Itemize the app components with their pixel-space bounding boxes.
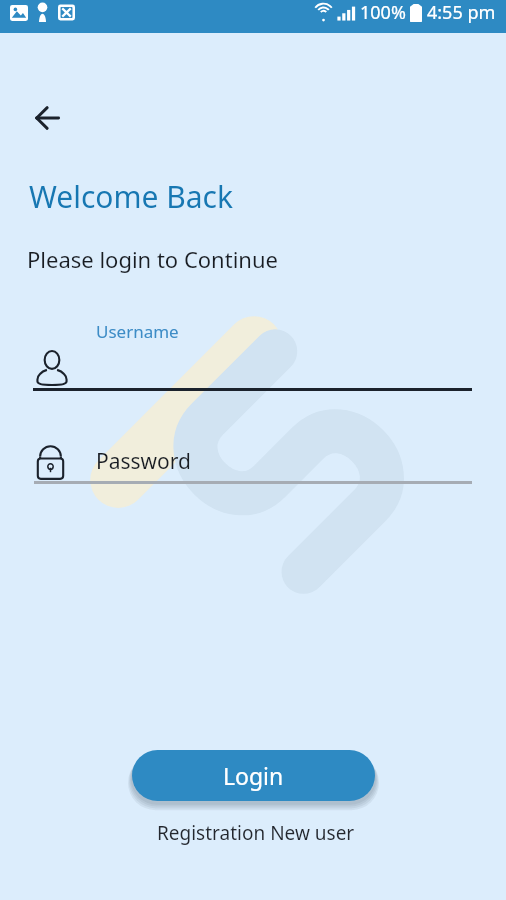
staticText: 100% (360, 0, 406, 25)
staticText: 4:55 pm (427, 0, 496, 25)
staticText: Please login to Continue (27, 244, 278, 274)
staticText: Username (96, 320, 179, 343)
button[interactable]: Back (22, 91, 76, 145)
staticText: Welcome Back (29, 176, 234, 217)
staticText: Login (223, 760, 284, 791)
staticText: Password (96, 447, 191, 476)
button[interactable]: Login (132, 750, 375, 801)
button[interactable]: Registration New user (157, 820, 355, 846)
